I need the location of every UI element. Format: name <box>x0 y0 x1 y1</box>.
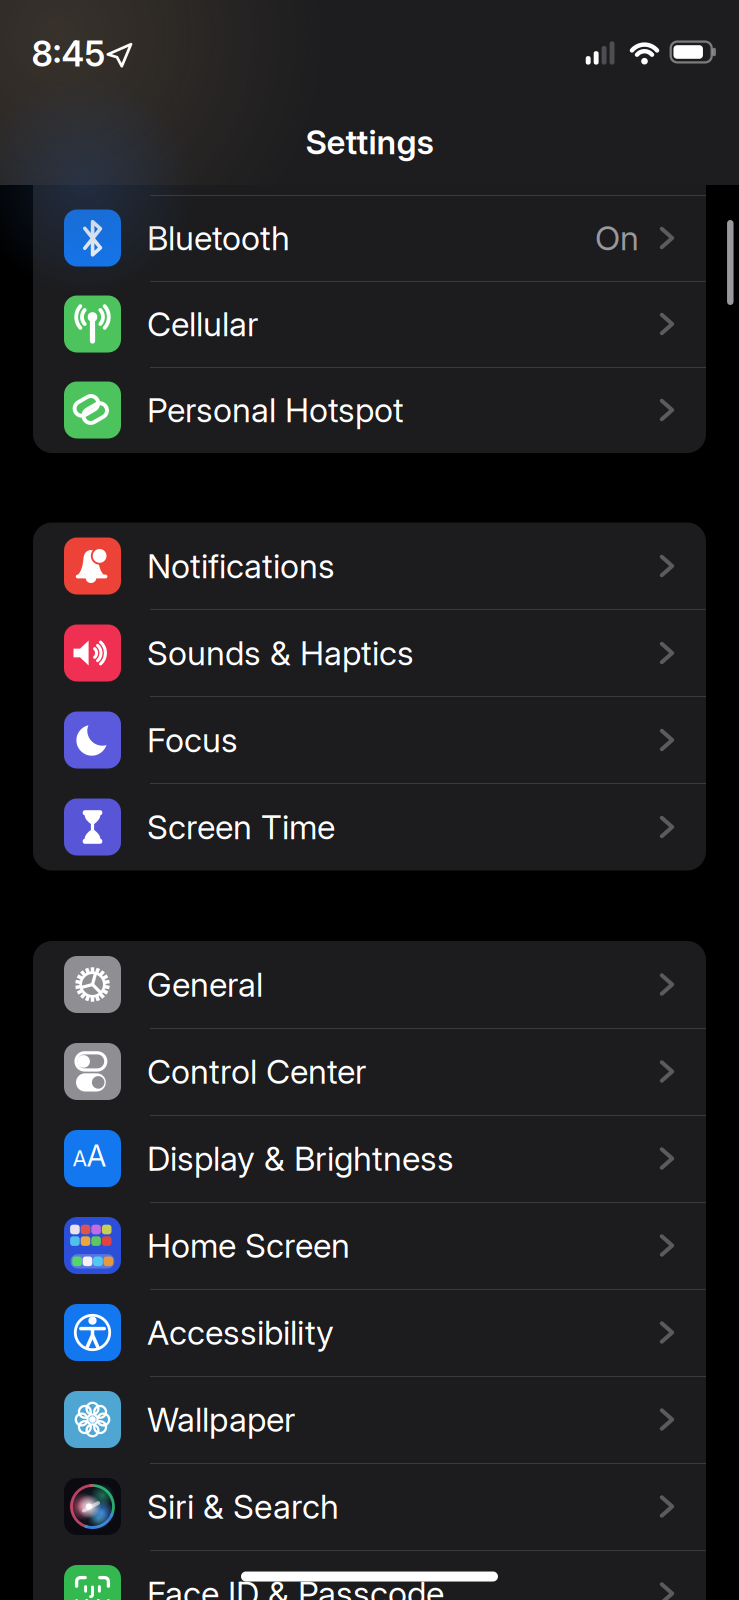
button[interactable]: Screen Time <box>33 784 706 870</box>
staticText: Home Screen <box>147 1226 350 1265</box>
button[interactable]: A <box>33 1115 706 1201</box>
button[interactable]: Control Center <box>33 1028 706 1114</box>
button[interactable]: Home Screen <box>33 1202 706 1288</box>
button[interactable]: Siri & Search <box>33 1463 706 1549</box>
staticText: Personal Hotspot <box>147 390 404 430</box>
staticText: Settings <box>305 122 433 162</box>
button[interactable]: Accessibility <box>33 1289 706 1375</box>
button[interactable]: Bluetooth <box>33 195 706 281</box>
button[interactable]: Sounds & Haptics <box>33 610 706 696</box>
staticText: On <box>595 218 639 258</box>
staticText: Wallpaper <box>147 1400 295 1439</box>
staticText: A <box>86 1138 106 1173</box>
button[interactable]: Face ID & Passcode <box>33 1550 706 1600</box>
button[interactable]: Cellular <box>33 281 706 367</box>
staticText: Screen Time <box>147 807 335 847</box>
button[interactable]: Focus <box>33 697 706 783</box>
staticText: Focus <box>147 720 238 760</box>
button[interactable]: Notifications <box>33 523 706 609</box>
staticText: Bluetooth <box>147 218 290 258</box>
staticText: Display & Brightness <box>147 1139 454 1178</box>
staticText: Siri & Search <box>147 1487 339 1526</box>
staticText: General <box>147 965 263 1004</box>
button[interactable]: General <box>33 941 706 1027</box>
button[interactable]: Personal Hotspot <box>33 367 706 453</box>
staticText: A <box>72 1146 87 1171</box>
staticText: Notifications <box>147 546 335 586</box>
staticText: Control Center <box>147 1052 366 1091</box>
staticText: Sounds & Haptics <box>147 633 414 673</box>
staticText: Cellular <box>147 304 258 344</box>
staticText: 8:45 <box>31 34 105 74</box>
button[interactable]: Wallpaper <box>33 1376 706 1462</box>
staticText: Accessibility <box>147 1313 334 1352</box>
staticText: Face ID & Passcode <box>147 1574 444 1600</box>
